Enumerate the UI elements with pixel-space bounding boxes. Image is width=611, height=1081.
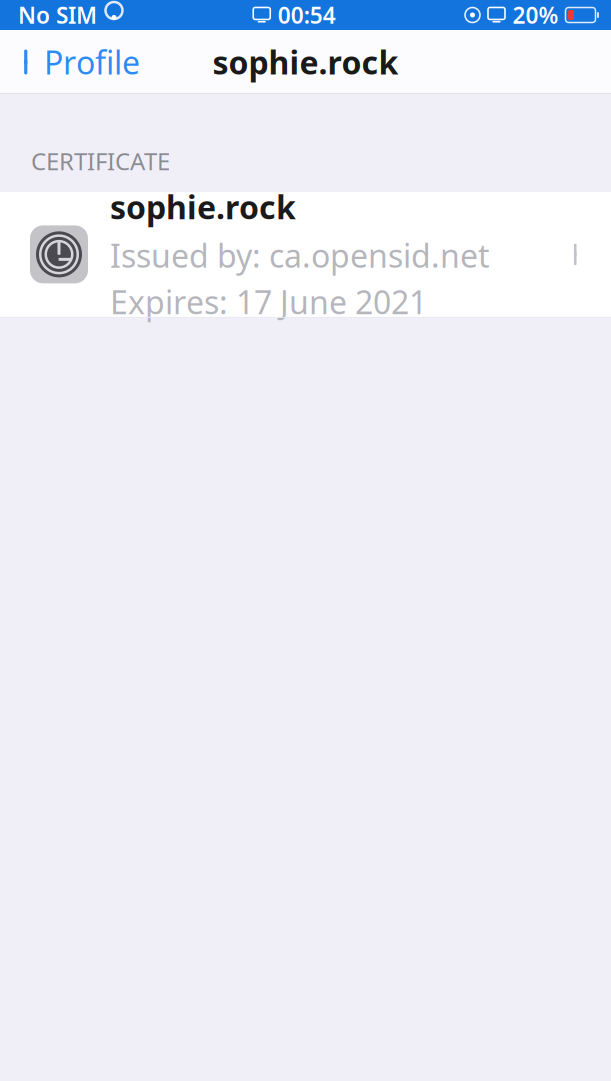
staticText: 20% xyxy=(512,0,558,30)
staticText: Profile xyxy=(44,41,140,83)
staticText: No SIM xyxy=(18,0,97,30)
button[interactable]: sophie.rock xyxy=(0,191,611,318)
staticText: CERTIFICATE xyxy=(31,145,170,177)
staticText: 00:54 xyxy=(278,0,336,30)
button[interactable]: Profile xyxy=(0,33,140,91)
staticText: sophie.rock xyxy=(212,41,398,83)
staticText: sophie.rock xyxy=(110,186,296,228)
staticText: Issued by: ca.opensid.net xyxy=(110,234,490,277)
staticText: Expires: 17 June 2021 xyxy=(110,281,427,323)
